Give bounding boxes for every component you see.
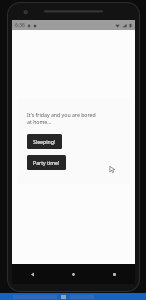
button[interactable]: Recent apps <box>94 264 135 284</box>
staticText: 6:36 <box>15 22 25 29</box>
staticText: Sleeping! <box>33 138 56 145</box>
button[interactable]: Back <box>12 264 53 284</box>
staticText: Party time! <box>33 159 60 166</box>
button[interactable]: Sleeping! <box>27 134 62 149</box>
button[interactable]: Home <box>53 264 94 284</box>
staticText: It's friday and you are bored at home... <box>27 111 101 126</box>
button[interactable]: Party time! <box>27 155 66 170</box>
